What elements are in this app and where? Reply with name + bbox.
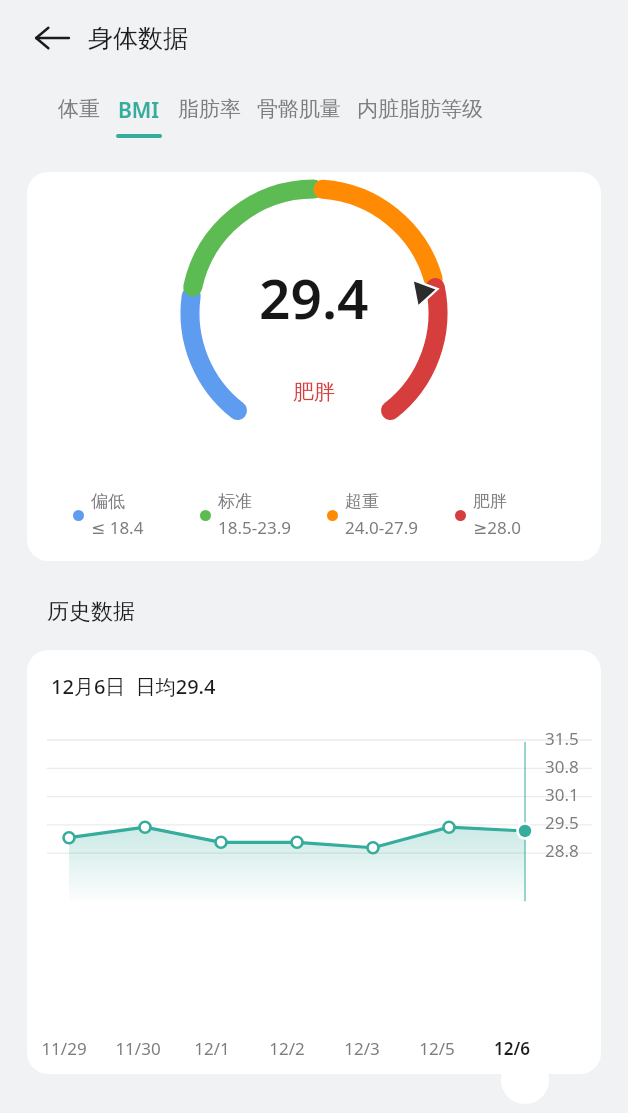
button[interactable]: Add measurement (501, 1056, 549, 1104)
button[interactable]: BMI (108, 96, 170, 138)
staticText: 18.5-23.9 (218, 516, 291, 539)
staticText: 身体数据 (88, 23, 188, 54)
staticText: 脂肪率 (178, 96, 241, 122)
staticText: 肥胖 (473, 491, 507, 512)
staticText: 12/1 (194, 1037, 230, 1060)
staticText: 24.0-27.9 (345, 516, 418, 539)
staticText: 标准 (218, 491, 252, 512)
staticText: 12/2 (269, 1037, 305, 1060)
staticText: ≥28.0 (473, 516, 521, 539)
button[interactable]: Back (26, 12, 78, 64)
staticText: BMI (118, 96, 160, 125)
staticText: 30.8 (545, 755, 579, 778)
staticText: 肥胖 (293, 379, 335, 405)
staticText: 超重 (345, 491, 379, 512)
staticText: 12月6日 日均29.4 (51, 673, 216, 700)
staticText: 体重 (58, 96, 100, 122)
staticText: 31.5 (545, 727, 579, 750)
staticText: 12/3 (344, 1037, 380, 1060)
staticText: 29.4 (259, 260, 369, 335)
button[interactable]: 脂肪率 (170, 96, 249, 135)
staticText: 历史数据 (47, 598, 135, 626)
staticText: 12/6 (494, 1037, 530, 1060)
button[interactable]: 骨骼肌量 (249, 96, 349, 135)
staticText: 30.1 (545, 783, 579, 806)
staticText: 12/5 (419, 1037, 455, 1060)
staticText: 29.5 (545, 811, 579, 834)
staticText: 11/30 (115, 1037, 161, 1060)
staticText: 骨骼肌量 (257, 96, 341, 122)
button[interactable]: 体重 (50, 96, 108, 135)
staticText: 28.8 (545, 839, 579, 862)
staticText: ≤ 18.4 (91, 516, 144, 539)
staticText: 偏低 (91, 491, 125, 512)
button[interactable]: 内脏脂肪等级 (349, 96, 491, 135)
staticText: 内脏脂肪等级 (357, 96, 483, 122)
staticText: 11/29 (41, 1037, 87, 1060)
